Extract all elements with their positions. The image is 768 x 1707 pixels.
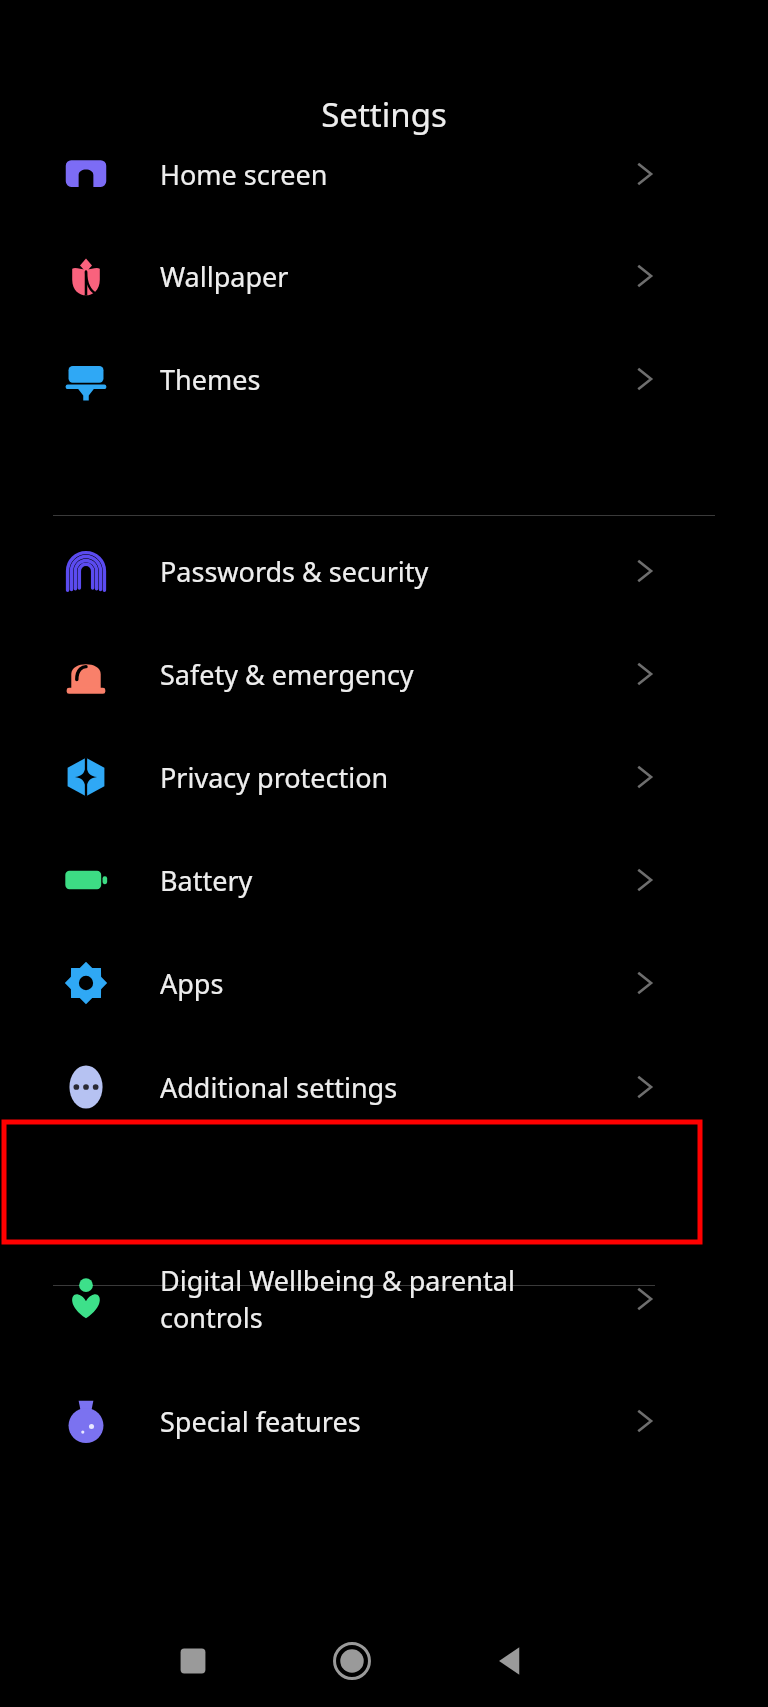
staticText: Apps: [160, 965, 224, 1002]
button[interactable]: Battery: [0, 852, 768, 908]
staticText: Themes: [160, 361, 261, 398]
button[interactable]: Special features: [0, 1393, 768, 1449]
staticText: Additional settings: [160, 1069, 398, 1106]
staticText: Digital Wellbeing & parental: [160, 1262, 515, 1299]
button[interactable]: Digital Wellbeing & parental: [0, 1253, 768, 1345]
staticText: Passwords & security: [160, 553, 429, 590]
button[interactable]: Apps: [0, 955, 768, 1011]
button[interactable]: Home screen: [0, 148, 768, 200]
button[interactable]: Home: [329, 1638, 375, 1684]
staticText: Battery: [160, 862, 253, 899]
staticText: Privacy protection: [160, 759, 389, 796]
staticText: Home screen: [160, 156, 328, 193]
button[interactable]: Back: [488, 1638, 534, 1684]
staticText: Settings: [0, 92, 768, 137]
staticText: controls: [160, 1299, 263, 1336]
button[interactable]: Wallpaper: [0, 248, 768, 304]
staticText: Wallpaper: [160, 258, 289, 295]
button[interactable]: Safety & emergency: [0, 646, 768, 702]
button[interactable]: Recent apps: [170, 1638, 216, 1684]
button[interactable]: Additional settings: [0, 1059, 768, 1115]
staticText: Safety & emergency: [160, 656, 414, 693]
staticText: Special features: [160, 1403, 361, 1440]
button[interactable]: Passwords & security: [0, 543, 768, 599]
button[interactable]: Themes: [0, 351, 768, 407]
button[interactable]: Privacy protection: [0, 749, 768, 805]
